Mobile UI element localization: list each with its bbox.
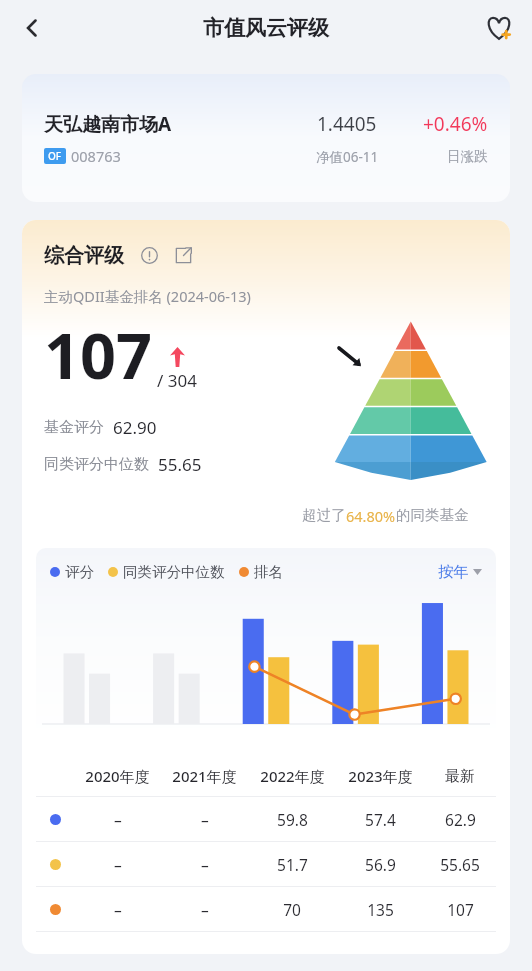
staticText: 56.9 xyxy=(365,854,396,875)
staticText: 2023年度 xyxy=(348,766,413,786)
staticText: +0.46% xyxy=(423,111,488,137)
staticText: 2021年度 xyxy=(172,766,237,786)
staticText: 主动QDII基金排名 (2024-06-13) xyxy=(44,286,251,306)
staticText: 70 xyxy=(283,899,301,920)
staticText: 按年 xyxy=(438,562,469,582)
staticText: / 304 xyxy=(157,369,197,392)
staticText: 净值06-11 xyxy=(316,148,379,166)
staticText: 62.9 xyxy=(445,809,476,830)
staticText: 107 xyxy=(447,899,474,920)
staticText: 51.7 xyxy=(277,854,308,875)
staticText: – xyxy=(114,809,122,830)
staticText: 评分 xyxy=(65,563,94,581)
button[interactable]: Info xyxy=(136,242,162,268)
staticText: 135 xyxy=(367,899,394,920)
staticText: 排名 xyxy=(254,563,283,581)
staticText: 1.4405 xyxy=(317,111,377,137)
staticText: 综合评级 xyxy=(44,243,124,268)
staticText: 同类评分中位数 xyxy=(44,455,149,474)
staticText: – xyxy=(201,809,209,830)
button[interactable]: 天弘越南市场A xyxy=(22,74,510,202)
staticText: – xyxy=(114,899,122,920)
staticText: – xyxy=(201,899,209,920)
staticText: 55.65 xyxy=(440,854,480,875)
staticText: 2022年度 xyxy=(260,766,325,786)
staticText: 同类评分中位数 xyxy=(123,563,225,581)
staticText: 57.4 xyxy=(365,809,396,830)
staticText: 008763 xyxy=(71,146,121,166)
staticText: 基金评分 xyxy=(44,418,104,437)
staticText: 62.90 xyxy=(113,416,157,439)
staticText: – xyxy=(201,854,209,875)
staticText: 的同类基金 xyxy=(396,506,469,524)
staticText: 天弘越南市场A xyxy=(44,111,172,137)
staticText: 超过了 xyxy=(302,506,346,524)
staticText: 2020年度 xyxy=(85,766,150,786)
staticText: 107 xyxy=(44,312,153,398)
staticText: 59.8 xyxy=(277,809,308,830)
staticText: OF xyxy=(48,149,62,163)
staticText: 64.80% xyxy=(346,506,396,526)
button[interactable]: Open detail xyxy=(170,242,196,268)
staticText: – xyxy=(114,854,122,875)
staticText: 最新 xyxy=(445,767,475,786)
button[interactable]: Add to favorites xyxy=(476,5,522,51)
staticText: 市值风云评级 xyxy=(203,15,329,41)
staticText: 日涨跌 xyxy=(447,148,488,165)
staticText: 55.65 xyxy=(158,453,202,476)
button[interactable]: 按年 xyxy=(438,562,482,582)
button[interactable]: Back xyxy=(8,4,56,52)
